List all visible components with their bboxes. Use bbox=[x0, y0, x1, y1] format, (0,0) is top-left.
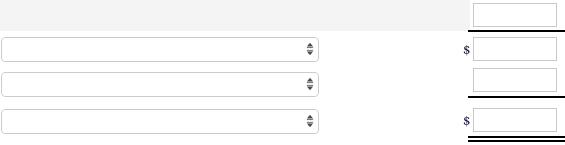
button[interactable]: Amount field 2 bbox=[473, 37, 557, 61]
button[interactable]: Amount field 4 bbox=[473, 108, 557, 132]
button[interactable]: Amount field 1 bbox=[473, 3, 557, 27]
staticText: $ bbox=[463, 112, 471, 130]
button[interactable]: Amount field 3 bbox=[473, 68, 557, 92]
button[interactable]: Select option 3 bbox=[1, 109, 319, 134]
staticText: $ bbox=[463, 41, 471, 59]
button[interactable]: Select option 2 bbox=[1, 72, 319, 97]
button[interactable]: Select option 1 bbox=[1, 37, 319, 62]
